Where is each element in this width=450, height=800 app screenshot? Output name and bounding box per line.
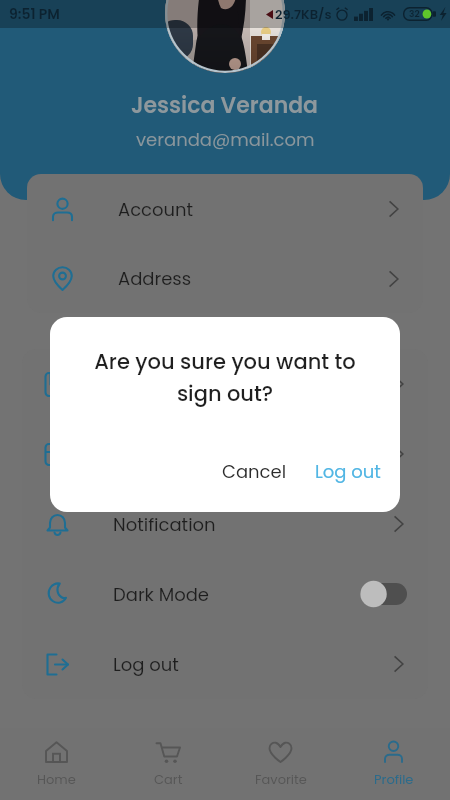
staticText: Account	[118, 197, 194, 222]
button[interactable]: Cancel	[208, 450, 301, 493]
button[interactable]: Dark mode toggle	[363, 583, 407, 605]
other: Address	[386, 271, 402, 287]
staticText: 29.7KB/s	[275, 5, 332, 23]
staticText: Log out	[315, 459, 381, 484]
button[interactable]: Payment	[22, 349, 428, 419]
other: Notification	[391, 516, 407, 532]
other: Log out	[391, 656, 407, 672]
staticText: Address	[118, 266, 192, 291]
staticText: 32	[409, 8, 420, 21]
other: Payment	[391, 376, 407, 392]
button[interactable]: Profile	[337, 728, 450, 800]
staticText: Dark Mode	[113, 582, 210, 607]
staticText: Notification	[113, 512, 216, 537]
button[interactable]: Privacy	[22, 419, 428, 489]
other: Privacy	[391, 446, 407, 462]
button[interactable]: Log out	[301, 450, 395, 493]
staticText: Favorite	[255, 770, 307, 788]
button[interactable]: Home	[0, 728, 112, 800]
button[interactable]: Notification	[22, 489, 428, 559]
button[interactable]: Favorite	[224, 728, 337, 800]
staticText: Payment	[113, 372, 194, 397]
staticText: Jessica Veranda	[131, 90, 319, 121]
staticText: veranda@mail.com	[136, 127, 315, 152]
staticText: Cancel	[222, 459, 287, 484]
button[interactable]: Address	[27, 244, 423, 313]
staticText: Are you sure you want to sign out?	[94, 347, 356, 409]
button[interactable]: Dark Mode	[22, 559, 428, 629]
button[interactable]: Account	[27, 174, 423, 244]
staticText: Log out	[113, 652, 179, 677]
button[interactable]: Cart	[112, 728, 224, 800]
staticText: Cart	[154, 770, 183, 788]
staticText: Home	[37, 770, 76, 788]
button[interactable]: Log out	[22, 629, 428, 699]
other: Account	[386, 201, 402, 217]
staticText: Profile	[374, 770, 414, 788]
staticText: 9:51 PM	[9, 4, 60, 24]
